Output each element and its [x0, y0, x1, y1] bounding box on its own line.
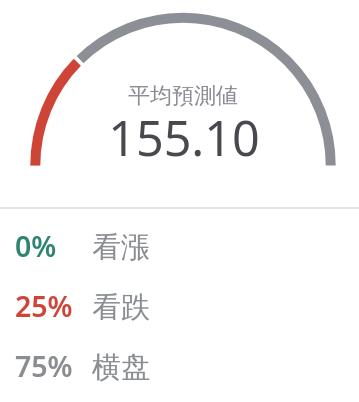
staticText: 看漲	[92, 229, 150, 266]
button[interactable]: 75%	[0, 338, 359, 398]
staticText: 看跌	[92, 289, 150, 326]
staticText: 75%	[15, 347, 73, 386]
staticText: 25%	[15, 287, 73, 326]
staticText: 平均預測値	[128, 82, 238, 110]
staticText: 0%	[15, 227, 57, 266]
other: 平均預測値 155.10 儀表	[0, 0, 359, 207]
staticText: 155.10	[108, 104, 260, 170]
button[interactable]: 25%	[0, 278, 359, 338]
staticText: 横盘	[92, 349, 150, 386]
button[interactable]: 0%	[0, 218, 359, 278]
